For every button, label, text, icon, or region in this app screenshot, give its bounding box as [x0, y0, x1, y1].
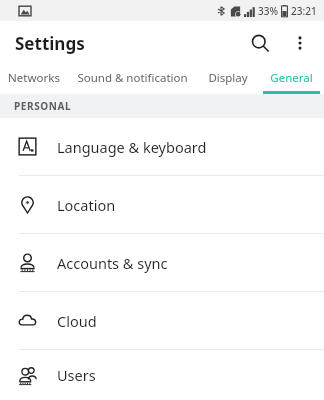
- staticText: Users: [57, 365, 96, 385]
- button[interactable]: Networks: [0, 65, 68, 94]
- button[interactable]: Users: [0, 350, 324, 400]
- staticText: PERSONAL: [14, 99, 72, 113]
- staticText: Language & keyboard: [57, 137, 207, 157]
- button[interactable]: General: [259, 65, 324, 94]
- staticText: Sound & notification: [77, 70, 188, 86]
- staticText: Location: [57, 195, 116, 215]
- button[interactable]: Display: [196, 65, 259, 94]
- staticText: 23:21: [291, 4, 317, 18]
- button[interactable]: Location: [0, 176, 324, 233]
- button[interactable]: Language & keyboard: [0, 118, 324, 175]
- staticText: General: [270, 70, 313, 86]
- button[interactable]: Cloud: [0, 292, 324, 349]
- button[interactable]: Search: [240, 23, 280, 63]
- button[interactable]: More options: [280, 23, 320, 63]
- staticText: 33%: [258, 4, 278, 18]
- button[interactable]: Accounts & sync: [0, 234, 324, 291]
- staticText: Accounts & sync: [57, 253, 168, 273]
- staticText: Settings: [15, 32, 85, 55]
- button[interactable]: Sound & notification: [68, 65, 196, 94]
- staticText: Cloud: [57, 311, 97, 331]
- staticText: Networks: [8, 70, 60, 86]
- staticText: Display: [208, 70, 248, 86]
